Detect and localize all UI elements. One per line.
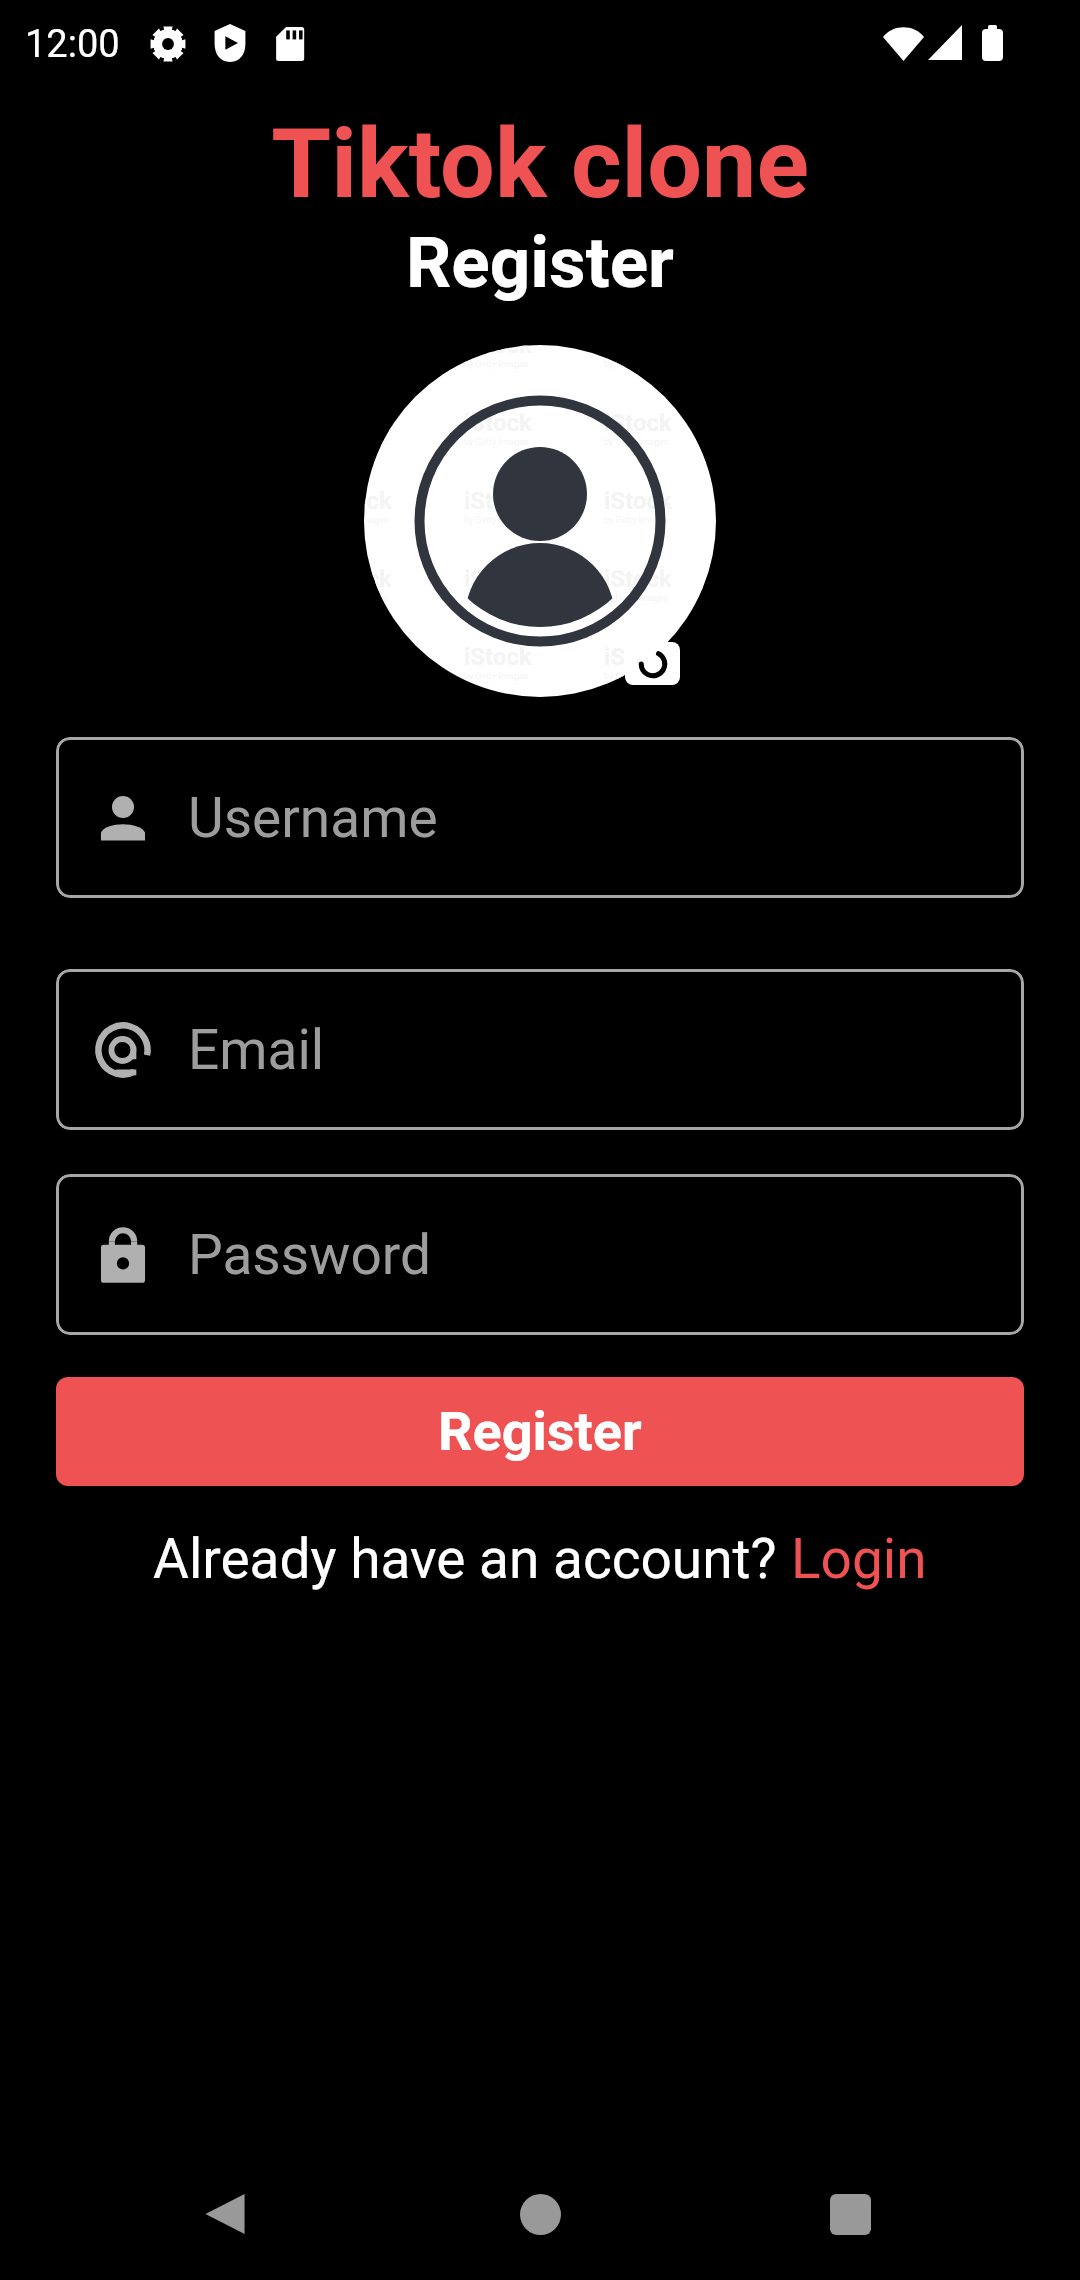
- staticText: iStock: [364, 565, 392, 593]
- staticText: iStock: [364, 487, 392, 515]
- staticText: by Getty Images: [604, 515, 669, 526]
- staticText: by Getty Images: [604, 593, 669, 604]
- staticText: by Getty Images: [604, 437, 669, 448]
- staticText: Already have an account?: [153, 1527, 791, 1591]
- staticText: Tiktok clone: [0, 107, 1080, 221]
- button[interactable]: Change profile photo: [625, 642, 680, 685]
- staticText: Password: [188, 1223, 431, 1287]
- staticText: Register: [0, 221, 1080, 304]
- staticText: by Getty Images: [464, 437, 529, 448]
- staticText: by Getty Images: [604, 671, 669, 682]
- button[interactable]: Back: [155, 2148, 295, 2280]
- staticText: iStock: [464, 487, 532, 515]
- staticText: by Getty Images: [364, 437, 389, 448]
- staticText: by Getty Images: [464, 359, 529, 370]
- button[interactable]: Home: [480, 2154, 600, 2274]
- button[interactable]: Recent apps: [780, 2148, 920, 2280]
- button[interactable]: Password: [56, 1174, 1024, 1335]
- staticText: iStock: [464, 409, 532, 437]
- staticText: iStock: [604, 345, 672, 359]
- staticText: iStock: [464, 345, 532, 359]
- staticText: by Getty Images: [364, 593, 389, 604]
- staticText: Username: [188, 786, 438, 850]
- staticText: by Getty Images: [364, 515, 389, 526]
- button[interactable]: Email: [56, 969, 1024, 1130]
- staticText: by Getty Images: [464, 671, 529, 682]
- button[interactable]: iStock: [364, 345, 716, 697]
- staticText: Login: [791, 1527, 927, 1591]
- staticText: iStock: [604, 409, 672, 437]
- button[interactable]: Username: [56, 737, 1024, 898]
- button[interactable]: Register: [56, 1377, 1024, 1486]
- staticText: iStock: [464, 643, 532, 671]
- staticText: 12:00: [25, 22, 120, 67]
- button[interactable]: Login: [791, 1527, 927, 1591]
- staticText: Register: [438, 1400, 642, 1463]
- staticText: iStock: [364, 409, 392, 437]
- staticText: by Getty Images: [464, 515, 529, 526]
- staticText: Email: [188, 1018, 325, 1082]
- staticText: by Getty Images: [464, 593, 529, 604]
- staticText: iStock: [464, 565, 532, 593]
- staticText: by Getty Images: [604, 359, 669, 370]
- staticText: iStock: [604, 565, 672, 593]
- staticText: iStock: [604, 487, 672, 515]
- staticText: iStock: [604, 643, 672, 671]
